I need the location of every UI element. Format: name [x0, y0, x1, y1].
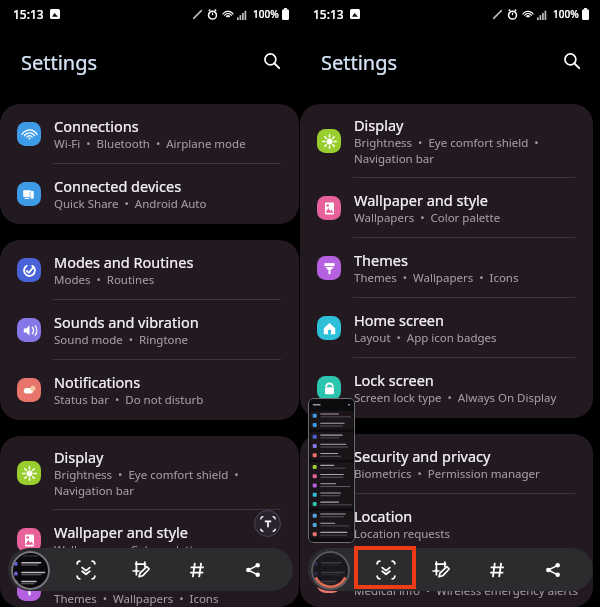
- staticText: Screen lock type • Always On Display: [354, 390, 557, 406]
- button[interactable]: Screenshot preview: [311, 551, 350, 590]
- staticText: Settings: [21, 49, 98, 76]
- staticText: 15:13: [313, 6, 344, 22]
- staticText: Navigation bar: [54, 483, 134, 499]
- button[interactable]: Share: [225, 548, 281, 591]
- button[interactable]: Themes: [300, 238, 593, 298]
- staticText: Medical info • Wireless emergency alerts: [354, 583, 578, 599]
- staticText: Wi-Fi • Bluetooth • Airplane mode: [54, 136, 246, 152]
- staticText: Themes: [354, 250, 408, 270]
- staticText: Wallpaper and style: [354, 190, 488, 210]
- staticText: Safety and emergency: [354, 563, 506, 583]
- button[interactable]: Tags: [169, 548, 225, 591]
- staticText: Location requests: [354, 526, 450, 542]
- staticText: Lock screen: [354, 370, 434, 390]
- staticText: Status bar • Do not disturb: [54, 392, 204, 408]
- button[interactable]: Location: [300, 494, 593, 554]
- staticText: Layout • App icon badges: [354, 330, 497, 346]
- staticText: Display: [354, 115, 404, 135]
- button[interactable]: Display: [0, 436, 299, 510]
- staticText: Settings: [321, 49, 398, 76]
- button[interactable]: Share: [525, 548, 581, 591]
- button[interactable]: Crop and edit: [113, 548, 169, 591]
- button[interactable]: Notifications: [0, 360, 299, 420]
- staticText: Brightness • Eye comfort shield •: [354, 135, 539, 151]
- button[interactable]: Security and privacy: [300, 434, 593, 494]
- staticText: 100%: [253, 7, 279, 21]
- staticText: Quick Share • Android Auto: [54, 196, 207, 212]
- staticText: Themes • Wallpapers • Icons: [354, 270, 519, 286]
- button[interactable]: Wallpaper and style: [0, 510, 299, 570]
- button[interactable]: Wallpaper and style: [300, 178, 593, 238]
- staticText: Biometrics • Permission manager: [354, 466, 540, 482]
- staticText: Themes • Wallpapers • Icons: [54, 591, 219, 607]
- staticText: Navigation bar: [354, 151, 434, 167]
- staticText: Connections: [54, 116, 139, 136]
- staticText: 15:13: [13, 6, 44, 22]
- button[interactable]: Connected devices: [0, 164, 299, 224]
- staticText: Wallpapers • Color palette: [54, 542, 201, 558]
- button[interactable]: Scroll capture: [358, 548, 413, 591]
- staticText: Brightness • Eye comfort shield •: [54, 467, 239, 483]
- button[interactable]: Tags: [469, 548, 525, 591]
- staticText: Home screen: [354, 310, 444, 330]
- staticText: Themes: [54, 571, 108, 591]
- button[interactable]: Lock screen: [300, 358, 593, 418]
- button[interactable]: Home screen: [300, 298, 593, 358]
- staticText: Modes and Routines: [54, 252, 194, 272]
- staticText: Security and privacy: [354, 446, 491, 466]
- button[interactable]: Modes and Routines: [0, 240, 299, 300]
- button[interactable]: Search: [255, 44, 289, 78]
- staticText: Modes • Routines: [54, 272, 155, 288]
- staticText: Sounds and vibration: [54, 312, 199, 332]
- button[interactable]: Connections: [0, 104, 299, 164]
- button[interactable]: Extract text: [254, 510, 281, 537]
- button[interactable]: Scroll capture: [58, 548, 113, 591]
- staticText: Location: [354, 506, 413, 526]
- staticText: Wallpapers • Color palette: [354, 210, 501, 226]
- button[interactable]: Search: [555, 44, 589, 78]
- staticText: 100%: [553, 7, 579, 21]
- staticText: Notifications: [54, 372, 141, 392]
- button[interactable]: Themes: [0, 570, 299, 607]
- button[interactable]: Safety and emergency: [300, 554, 593, 607]
- button[interactable]: Screenshot preview: [308, 398, 355, 543]
- button[interactable]: Sounds and vibration: [0, 300, 299, 360]
- staticText: Wallpaper and style: [54, 522, 188, 542]
- button[interactable]: Display: [300, 104, 593, 178]
- button[interactable]: Screenshot preview: [11, 551, 50, 590]
- staticText: Connected devices: [54, 176, 182, 196]
- staticText: Sound mode • Ringtone: [54, 332, 189, 348]
- staticText: Display: [54, 447, 104, 467]
- button[interactable]: Crop and edit: [413, 548, 469, 591]
